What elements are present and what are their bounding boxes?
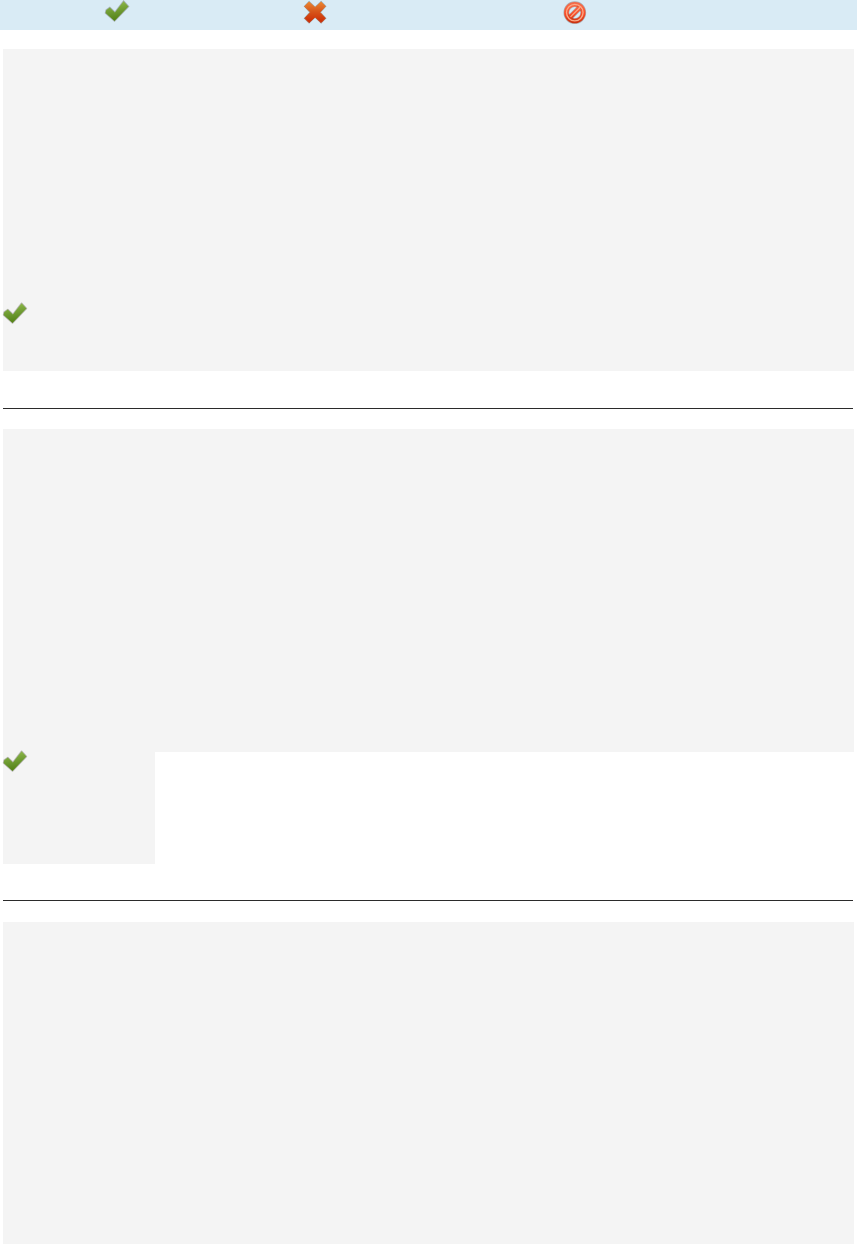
button[interactable]: Block — [564, 0, 588, 24]
button[interactable]: Reject — [304, 0, 328, 24]
button[interactable]: Approve — [103, 0, 133, 26]
button[interactable]: Image placeholder 1 — [3, 49, 854, 371]
